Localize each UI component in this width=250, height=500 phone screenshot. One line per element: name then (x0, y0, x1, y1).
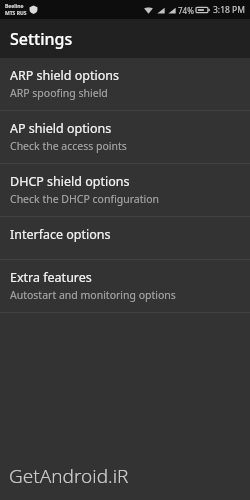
button[interactable]: Extra features (0, 260, 250, 312)
staticText: DHCP shield options (10, 173, 130, 190)
staticText: MTS RUS (5, 10, 27, 17)
staticText: Check the access points (10, 139, 127, 153)
staticText: AP shield options (10, 120, 112, 137)
staticText: GetAndroid.iR (9, 463, 129, 489)
staticText: Check the DHCP configuration (10, 192, 160, 206)
button[interactable]: ARP shield options (0, 58, 250, 110)
staticText: Settings (10, 28, 73, 50)
staticText: ARP spoofing shield (10, 86, 108, 100)
staticText: Extra features (10, 269, 92, 286)
staticText: Interface options (10, 226, 111, 243)
staticText: Beeline (5, 3, 24, 10)
staticText: Autostart and monitoring options (10, 288, 176, 302)
staticText: 3:18 PM (213, 4, 245, 16)
staticText: 74% (178, 5, 194, 16)
staticText: ARP shield options (10, 67, 119, 84)
button[interactable]: AP shield options (0, 111, 250, 163)
button[interactable]: DHCP shield options (0, 164, 250, 216)
button[interactable]: Interface options (0, 217, 250, 259)
